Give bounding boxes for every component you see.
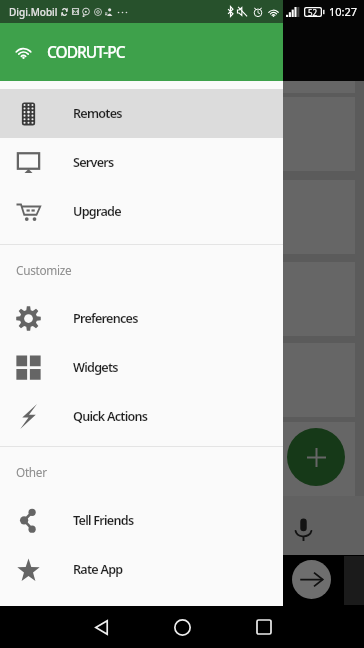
- button[interactable]: Quick Actions: [0, 392, 283, 441]
- staticText: Preferences: [73, 310, 138, 327]
- staticText: Digi.Mobil: [9, 5, 58, 19]
- button[interactable]: Back: [79, 606, 124, 648]
- staticText: Tell Friends: [73, 512, 134, 529]
- staticText: Widgets: [73, 359, 118, 376]
- staticText: 52: [308, 7, 318, 17]
- button[interactable]: Servers: [0, 138, 283, 187]
- button[interactable]: Upgrade: [0, 187, 283, 236]
- button[interactable]: Tell Friends: [0, 496, 283, 545]
- staticText: Customize: [16, 262, 72, 278]
- staticText: Other: [16, 464, 47, 480]
- staticText: CODRUT-PC: [47, 41, 125, 62]
- staticText: Rate App: [73, 561, 123, 578]
- button[interactable]: Preferences: [0, 294, 283, 343]
- button[interactable]: Remotes: [0, 89, 283, 138]
- staticText: 10:27: [329, 4, 358, 19]
- button[interactable]: Home: [160, 606, 205, 648]
- button[interactable]: Go: [292, 560, 331, 599]
- staticText: Quick Actions: [73, 408, 148, 425]
- staticText: Servers: [73, 154, 114, 171]
- staticText: Upgrade: [73, 203, 121, 220]
- button[interactable]: Recents: [241, 606, 286, 648]
- button[interactable]: Add: [287, 428, 345, 486]
- staticText: Remotes: [73, 105, 122, 122]
- button[interactable]: Widgets: [0, 343, 283, 392]
- button[interactable]: Rate App: [0, 545, 283, 594]
